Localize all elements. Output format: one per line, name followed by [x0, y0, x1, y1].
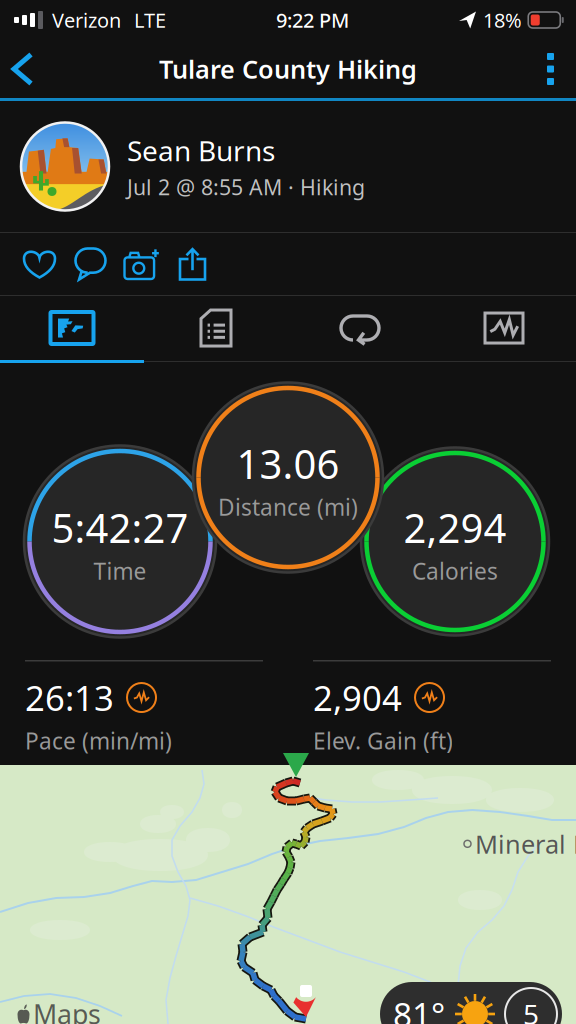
staticText: Elev. Gain (ft)	[313, 725, 453, 756]
staticText: Maps	[33, 996, 101, 1024]
button[interactable]: Sean Burns	[0, 101, 576, 232]
button[interactable]: Share	[167, 233, 218, 295]
staticText: Jul 2 @ 8:55 AM · Hiking	[127, 173, 365, 201]
button[interactable]: Like	[14, 233, 65, 295]
staticText: 13.06	[236, 437, 339, 490]
staticText: 18%	[483, 7, 522, 33]
staticText: Calories	[412, 556, 498, 586]
button[interactable]: Splits	[144, 296, 288, 360]
button[interactable]: Laps	[288, 296, 432, 360]
button[interactable]: Add photo	[116, 233, 167, 295]
button[interactable]: Back	[0, 40, 51, 97]
staticText: 2,294	[403, 501, 506, 554]
staticText: 2,904	[313, 674, 402, 720]
staticText: Sean Burns	[127, 132, 275, 169]
button[interactable]: More options	[525, 41, 576, 97]
staticText: Tulare County Hiking	[159, 52, 417, 86]
staticText: 81°	[393, 992, 445, 1024]
staticText: Mineral King	[475, 827, 576, 861]
button[interactable]: Comment	[65, 233, 116, 295]
staticText: Time	[93, 556, 146, 586]
staticText: 26:13	[25, 674, 114, 720]
button[interactable]: Analysis	[432, 296, 576, 360]
staticText: 5:42:27	[51, 501, 188, 554]
staticText: 5	[523, 995, 539, 1024]
button[interactable]: 81°	[380, 982, 562, 1024]
staticText: LTE	[134, 7, 166, 33]
staticText: Distance (mi)	[218, 492, 358, 522]
button[interactable]: Map	[0, 296, 144, 360]
staticText: 9:22 PM	[276, 7, 349, 33]
staticText: Pace (min/mi)	[25, 725, 172, 756]
staticText: Verizon	[52, 7, 121, 33]
